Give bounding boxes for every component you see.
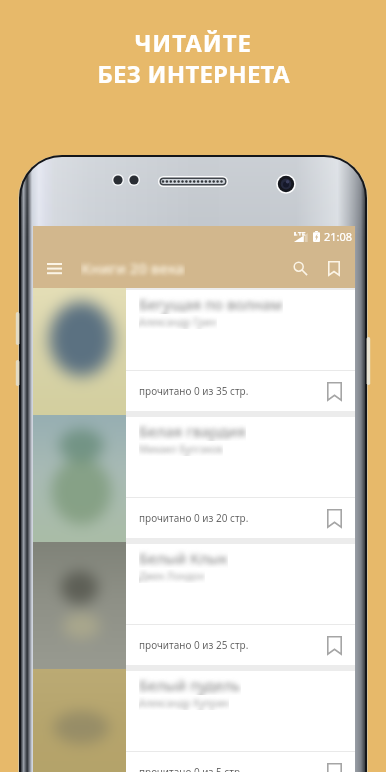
staticText: Белая гвардия (139, 421, 246, 441)
button[interactable]: Open navigation menu (37, 251, 71, 285)
staticText: Александр Куприн (139, 696, 229, 710)
staticText: Джек Лондон (139, 569, 205, 583)
button[interactable]: Add bookmark (326, 758, 342, 772)
button[interactable]: Add bookmark (326, 377, 342, 405)
staticText: прочитано 0 из 20 стр. (139, 511, 249, 525)
staticText: прочитано 0 из 25 стр. (139, 638, 249, 652)
staticText: прочитано 0 из 5 стр. (139, 765, 243, 772)
staticText: Александр Грин (139, 315, 217, 329)
staticText: Бегущая по волнам (139, 294, 283, 314)
staticText: Белый пудель (139, 675, 241, 695)
button[interactable]: Бегущая по волнам (126, 290, 355, 411)
button[interactable]: Add bookmark (326, 631, 342, 659)
button[interactable]: Add bookmark (326, 504, 342, 532)
button[interactable]: Search (283, 251, 317, 285)
staticText: Михаил Булгаков (139, 442, 223, 456)
button[interactable]: Bookmarks (317, 251, 351, 285)
button[interactable]: Белая гвардия (126, 417, 355, 538)
button[interactable]: Белый Клык (126, 544, 355, 665)
staticText: 21:08 (324, 229, 353, 244)
staticText: ЧИТАЙТЕ (134, 26, 252, 59)
staticText: Белый Клык (139, 548, 228, 568)
staticText: БЕЗ ИНТЕРНЕТА (97, 57, 290, 90)
staticText: прочитано 0 из 35 стр. (139, 384, 249, 398)
button[interactable]: Белый пудель (126, 671, 355, 772)
staticText: Книги 20 века (81, 258, 185, 278)
